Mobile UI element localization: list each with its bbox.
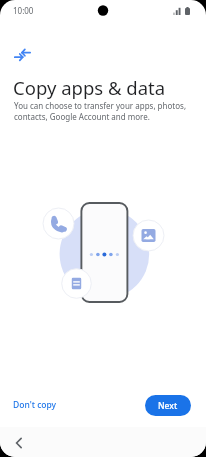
button[interactable]: Back — [7, 431, 30, 454]
button[interactable]: Don't copy — [10, 393, 60, 417]
staticText: You can choose to transfer your apps, ph… — [14, 100, 198, 122]
staticText: Next — [158, 400, 178, 412]
staticText: 10:00 — [13, 5, 34, 16]
button[interactable]: Next — [145, 395, 191, 416]
staticText: Copy apps & data — [13, 75, 166, 100]
staticText: Don't copy — [13, 399, 57, 411]
